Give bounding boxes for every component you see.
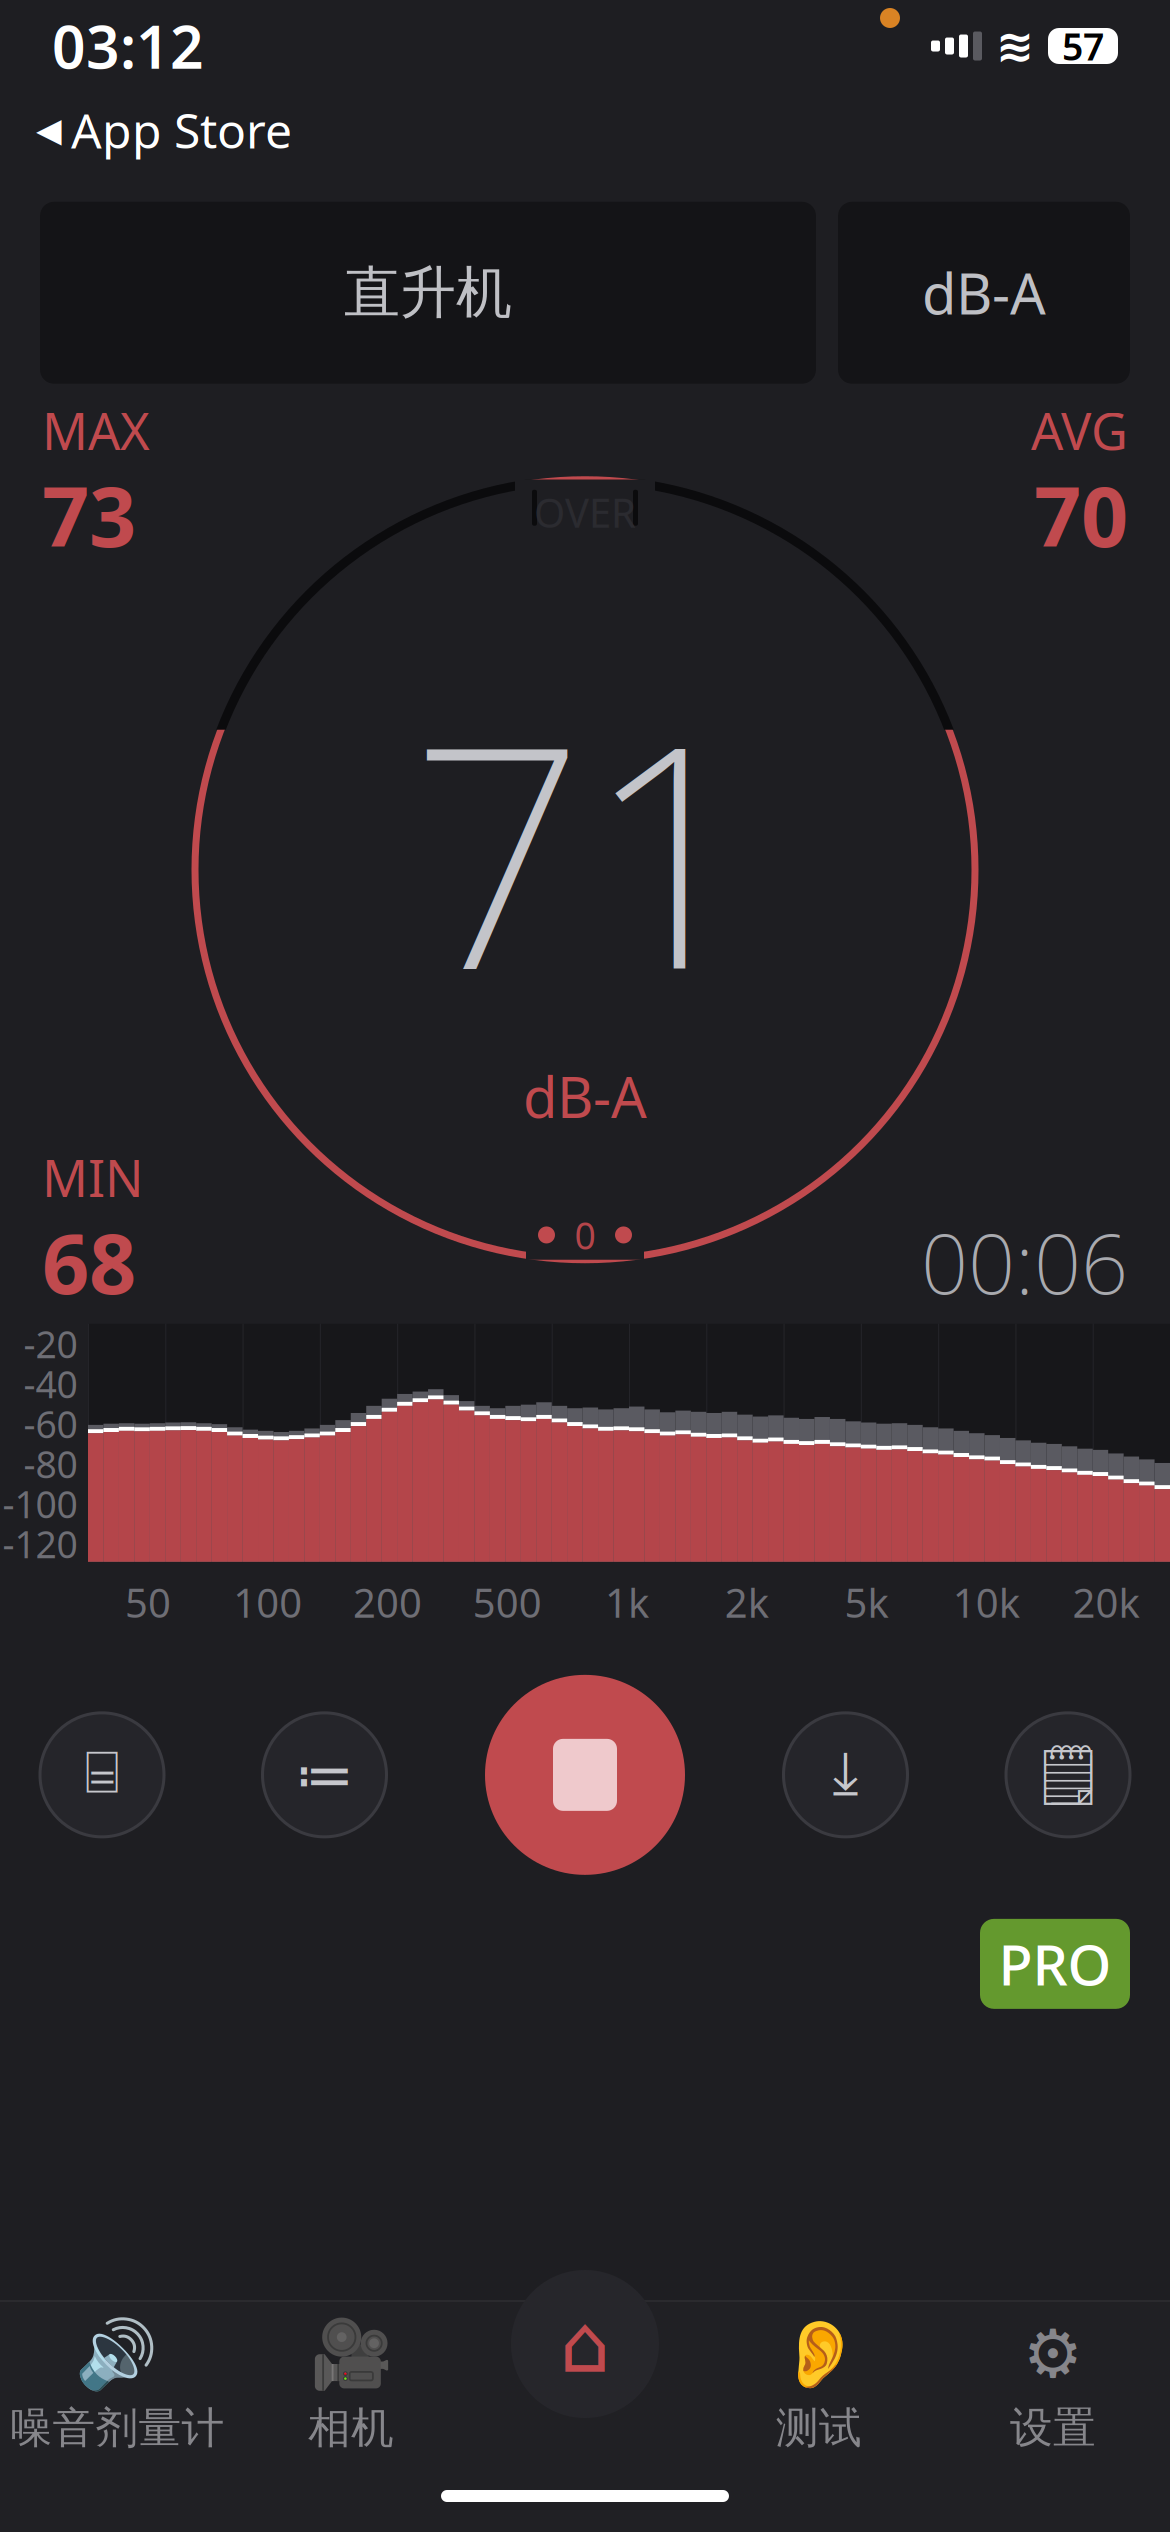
staticText: 直升机 [344,258,512,327]
staticText: -120 [2,1519,77,1569]
staticText: 噪音剂量计 [9,2402,224,2454]
staticText: -60 [23,1399,77,1449]
staticText: ≋ [996,20,1034,72]
staticText: MAX [42,397,150,464]
staticText: App Store [71,98,292,162]
staticText: ◀ [36,111,62,149]
button[interactable]: 🎥 [234,2315,468,2455]
button[interactable]: Home [511,2270,659,2418]
staticText: 70 [1034,460,1128,570]
staticText: 测试 [776,2402,862,2454]
staticText: 100 [233,1576,302,1629]
staticText: 👂 [777,2316,860,2392]
staticText: 🎥 [309,2316,392,2392]
button[interactable]: ◀ [30,94,298,166]
staticText: 🔊 [75,2316,158,2392]
staticText: ⌂ [564,2314,606,2389]
staticText: ⌸ [84,1746,119,1803]
button[interactable]: Presets [262,1713,386,1837]
button[interactable]: ⚙ [936,2315,1170,2455]
staticText: 00:06 [921,1207,1128,1317]
staticText: ≔ [295,1742,354,1808]
staticText: dB-A [523,1059,647,1134]
staticText: 200 [353,1576,422,1629]
staticText: 5k [845,1576,889,1629]
button[interactable]: Stop [485,1675,685,1875]
staticText: 68 [42,1207,136,1317]
staticText: 相机 [308,2402,394,2454]
staticText: 设置 [1010,2402,1096,2454]
staticText: 57 [1062,21,1104,71]
button[interactable]: Reports [1006,1713,1130,1837]
staticText: ⚙ [1023,2316,1083,2392]
staticText: 0 [574,1210,595,1260]
staticText: OVER [534,486,636,539]
button[interactable]: 🔊 [0,2315,234,2455]
staticText: -100 [2,1479,77,1529]
button[interactable]: ⌂ [468,2315,702,2455]
staticText: 1k [605,1576,649,1629]
staticText: 71 [410,646,760,1053]
staticText: 03:12 [52,7,204,85]
button[interactable]: PRO [980,1919,1130,2009]
button[interactable]: 直升机 [40,202,816,384]
staticText: -40 [23,1359,77,1409]
button[interactable]: Save [783,1713,907,1837]
staticText: MIN [42,1144,144,1211]
staticText: -20 [23,1319,77,1369]
staticText: 50 [125,1576,171,1629]
staticText: ⤓ [832,1746,858,1803]
button[interactable]: 👂 [702,2315,936,2455]
staticText: AVG [1031,397,1128,464]
button[interactable]: dB-A [838,202,1130,384]
button[interactable]: Calibrate [40,1713,164,1837]
staticText: PRO [998,1927,1111,2001]
staticText: 10k [953,1576,1020,1629]
staticText: 500 [473,1576,542,1629]
staticText: 🗒 [1031,1741,1105,1808]
staticText: 73 [42,460,136,570]
staticText: ⌂ [559,2299,610,2389]
staticText: 2k [725,1576,769,1629]
staticText: -80 [23,1439,77,1489]
staticText: dB-A [922,256,1046,330]
staticText: 20k [1073,1576,1140,1629]
